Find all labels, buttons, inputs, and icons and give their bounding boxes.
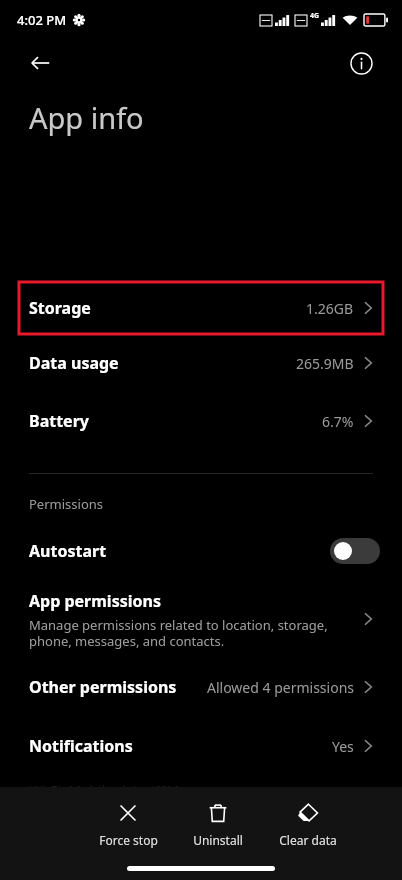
staticText: Allowed 4 permissions [207, 678, 354, 697]
staticText: 265.9MB [296, 354, 354, 373]
staticText: Wi-Fi, Mobile data (SIM [29, 781, 380, 800]
staticText: 6.7% [322, 412, 354, 431]
button[interactable]: Battery [0, 392, 402, 450]
staticText: Uninstall [193, 832, 243, 848]
button[interactable]: Notifications [0, 723, 402, 769]
staticText: Manage permissions related to location, … [29, 616, 328, 649]
staticText: Notifications [29, 735, 133, 757]
staticText: 1.26GB [306, 299, 354, 318]
staticText: Clear data [279, 832, 337, 848]
button[interactable]: Clear data [273, 798, 343, 852]
button[interactable]: Storage [19, 282, 383, 334]
staticText: Battery [29, 410, 89, 432]
staticText: 4:02 PM [17, 11, 67, 29]
button[interactable]: Uninstall [183, 798, 253, 852]
staticText: Autostart [29, 540, 107, 562]
button[interactable]: Data usage [0, 334, 402, 392]
staticText: Force stop [99, 832, 158, 848]
staticText: Data usage [29, 352, 119, 374]
staticText: 4G [310, 11, 320, 21]
staticText: App info [29, 98, 144, 137]
staticText: Storage [29, 297, 306, 319]
staticText: Yes [332, 737, 354, 756]
staticText: Other permissions [29, 676, 177, 698]
button[interactable]: App details [344, 46, 378, 80]
staticText: Permissions [29, 495, 104, 513]
button[interactable]: App permissions [0, 586, 402, 652]
button[interactable]: Autostart [0, 530, 402, 572]
button[interactable]: Back [22, 45, 58, 81]
staticText: App permissions [29, 590, 161, 612]
button[interactable]: Other permissions [0, 664, 402, 710]
button[interactable]: Autostart toggle [330, 538, 380, 564]
button[interactable]: Force stop [93, 798, 163, 852]
